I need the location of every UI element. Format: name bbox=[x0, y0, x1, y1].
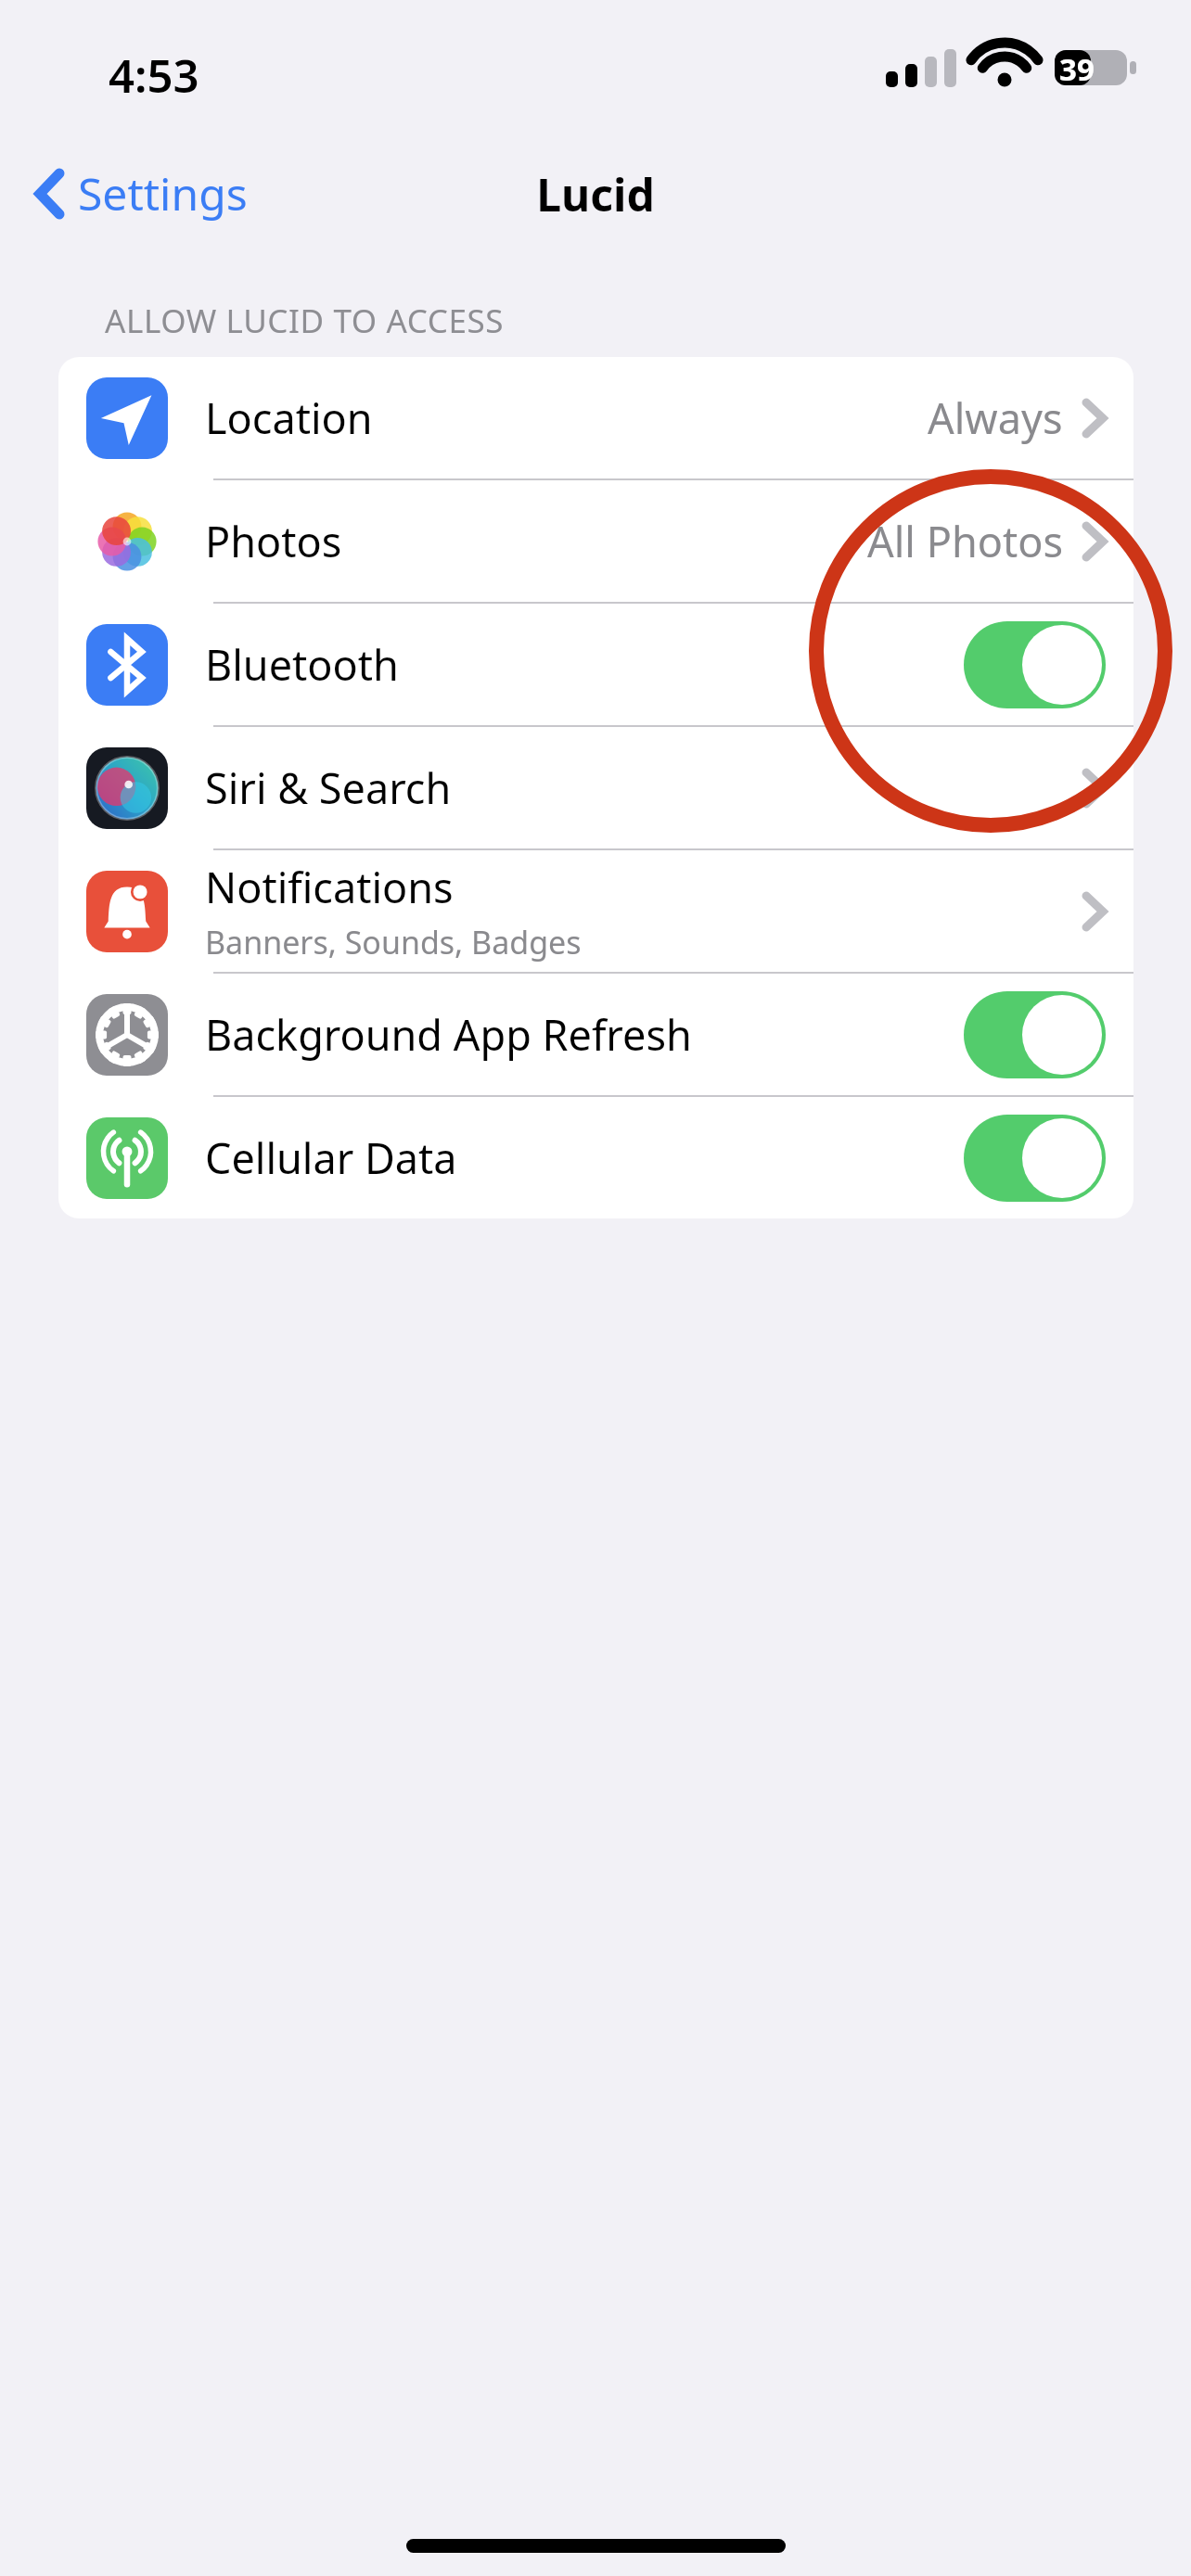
button[interactable]: Background App Refresh bbox=[58, 974, 1133, 1095]
staticText: Banners, Sounds, Badges bbox=[205, 921, 582, 963]
button[interactable]: Bluetooth toggle, on bbox=[964, 621, 1106, 708]
button[interactable]: Background App Refresh toggle, on bbox=[964, 991, 1106, 1078]
button[interactable]: Siri & Search bbox=[58, 727, 1133, 848]
staticText: 39 bbox=[1059, 48, 1095, 90]
button[interactable]: Notifications bbox=[58, 850, 1133, 972]
staticText: Location bbox=[205, 389, 373, 446]
button[interactable]: Cellular Data toggle, on bbox=[964, 1115, 1106, 1202]
staticText: Settings bbox=[78, 163, 248, 223]
button[interactable]: Location bbox=[58, 357, 1133, 478]
button[interactable]: Photos bbox=[58, 480, 1133, 602]
staticText: All Photos bbox=[867, 513, 1063, 569]
button[interactable]: Settings bbox=[28, 156, 257, 231]
staticText: Bluetooth bbox=[205, 636, 399, 693]
staticText: Photos bbox=[205, 513, 342, 569]
button[interactable]: Bluetooth bbox=[58, 604, 1133, 725]
button[interactable]: Cellular Data bbox=[58, 1097, 1133, 1218]
staticText: Lucid bbox=[0, 164, 1191, 224]
staticText: Always bbox=[928, 389, 1063, 446]
staticText: ALLOW LUCID TO ACCESS bbox=[105, 299, 505, 343]
staticText: Background App Refresh bbox=[205, 1006, 692, 1063]
staticText: Notifications bbox=[205, 859, 454, 915]
staticText: 4:53 bbox=[109, 45, 199, 107]
staticText: Cellular Data bbox=[205, 1129, 457, 1186]
staticText: Siri & Search bbox=[205, 759, 452, 816]
